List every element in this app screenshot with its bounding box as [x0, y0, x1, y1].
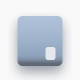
button[interactable]: Capture	[45, 47, 55, 60]
